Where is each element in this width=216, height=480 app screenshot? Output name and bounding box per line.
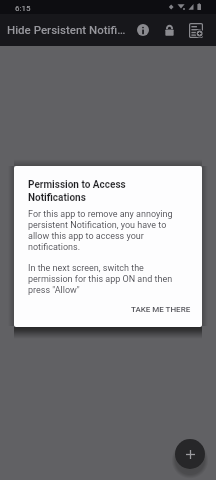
- button[interactable]: Add note: [182, 17, 209, 44]
- staticText: Permission to Access Notifications: [28, 179, 126, 203]
- button[interactable]: Information: [130, 17, 156, 43]
- button[interactable]: TAKE ME THERE: [129, 303, 193, 316]
- staticText: In the next screen, switch the permissio…: [28, 263, 189, 296]
- button[interactable]: Lock: [156, 17, 182, 43]
- staticText: TAKE ME THERE: [131, 305, 191, 314]
- button[interactable]: Add: [175, 439, 205, 469]
- staticText: 6:15: [15, 4, 31, 13]
- staticText: For this app to remove any annoying pers…: [28, 209, 189, 253]
- staticText: Hide Persistent Notifi…: [7, 23, 126, 36]
